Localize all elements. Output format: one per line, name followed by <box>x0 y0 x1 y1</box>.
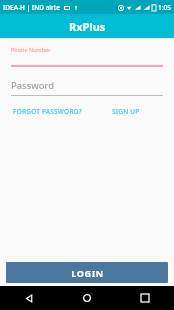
staticText: SIGN UP <box>112 107 140 116</box>
staticText: Password <box>11 79 54 92</box>
staticText: Phone Number <box>11 46 51 53</box>
staticText: FORGOT PASSWORD? <box>13 107 82 116</box>
button[interactable]: Recent apps <box>116 286 174 310</box>
button[interactable]: Home <box>58 286 116 310</box>
staticText: RxPlus <box>69 19 106 34</box>
button[interactable]: Password <box>11 79 163 96</box>
staticText: 1:05 <box>158 3 171 12</box>
button[interactable]: Back <box>0 286 58 310</box>
button[interactable]: SIGN UP <box>111 105 141 118</box>
button[interactable]: Phone Number <box>11 46 163 67</box>
button[interactable]: LOGIN <box>6 262 168 283</box>
staticText: IDEA-H | IND airte <box>3 3 61 12</box>
button[interactable]: FORGOT PASSWORD? <box>13 105 82 118</box>
staticText: LOGIN <box>71 267 104 279</box>
